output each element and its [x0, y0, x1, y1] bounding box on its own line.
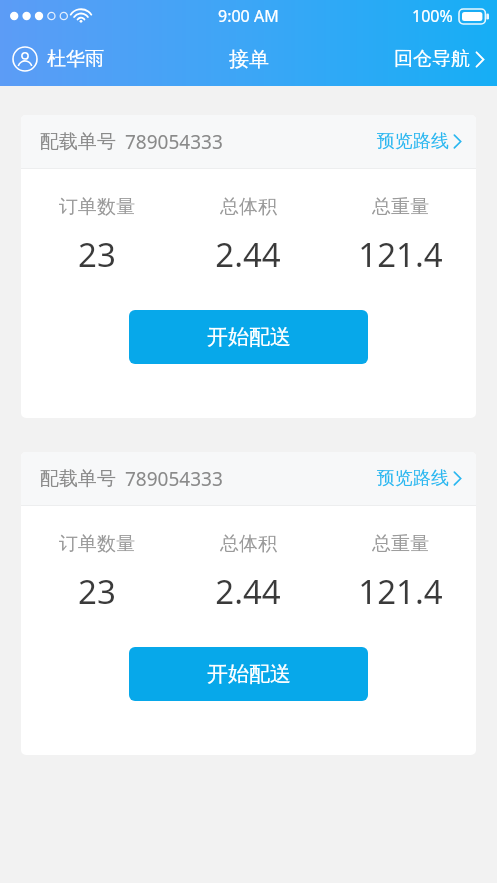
- staticText: 23: [78, 232, 116, 277]
- staticText: 100%: [412, 5, 453, 27]
- staticText: 总重量: [372, 532, 429, 556]
- staticText: 预览路线: [377, 130, 449, 153]
- staticText: 23: [78, 569, 116, 614]
- staticText: 789054333: [125, 129, 223, 155]
- staticText: 2.44: [215, 232, 281, 277]
- staticText: 总重量: [372, 195, 429, 219]
- button[interactable]: 预览路线: [365, 459, 476, 498]
- staticText: 开始配送: [207, 324, 291, 350]
- staticText: 订单数量: [59, 532, 135, 556]
- button[interactable]: 配载单号: [21, 452, 476, 755]
- button[interactable]: 回仓导航: [382, 41, 497, 77]
- staticText: 配载单号: [40, 130, 116, 154]
- staticText: 789054333: [125, 466, 223, 492]
- staticText: 2.44: [215, 569, 281, 614]
- button[interactable]: 开始配送: [129, 647, 368, 701]
- staticText: 开始配送: [207, 661, 291, 687]
- staticText: 总体积: [220, 195, 277, 219]
- staticText: 接单: [229, 47, 269, 72]
- staticText: 总体积: [220, 532, 277, 556]
- staticText: 9:00 AM: [218, 5, 279, 27]
- staticText: 回仓导航: [394, 47, 470, 71]
- button[interactable]: 预览路线: [365, 122, 476, 161]
- staticText: 121.4: [358, 232, 443, 277]
- staticText: 配载单号: [40, 467, 116, 491]
- staticText: 121.4: [358, 569, 443, 614]
- button[interactable]: 杜华雨: [0, 40, 116, 78]
- button[interactable]: 开始配送: [129, 310, 368, 364]
- staticText: 订单数量: [59, 195, 135, 219]
- staticText: 预览路线: [377, 467, 449, 490]
- button[interactable]: 配载单号: [21, 115, 476, 418]
- staticText: 杜华雨: [47, 47, 104, 71]
